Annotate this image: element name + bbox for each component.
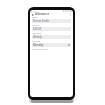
- staticText: Name: [32, 16, 38, 19]
- staticText: Paid automatically: [32, 48, 49, 51]
- staticText: 9:41: [31, 10, 35, 12]
- button[interactable]: Back: [31, 13, 34, 16]
- staticText: Amount: [32, 24, 40, 27]
- staticText: $20.00: [33, 27, 70, 31]
- staticText: Frequency: [32, 32, 42, 35]
- button[interactable]: Weekly: [32, 35, 71, 39]
- button[interactable]: More options: [68, 12, 72, 16]
- staticText: Start day: [32, 40, 41, 43]
- button[interactable]: Emma Smith: [32, 19, 71, 23]
- button[interactable]: $20.00: [32, 27, 71, 31]
- staticText: Weekly: [33, 35, 70, 39]
- staticText: Monday: [33, 43, 68, 47]
- button[interactable]: Monday: [32, 43, 71, 47]
- staticText: Allowance: [35, 12, 50, 16]
- staticText: Emma Smith: [33, 19, 70, 23]
